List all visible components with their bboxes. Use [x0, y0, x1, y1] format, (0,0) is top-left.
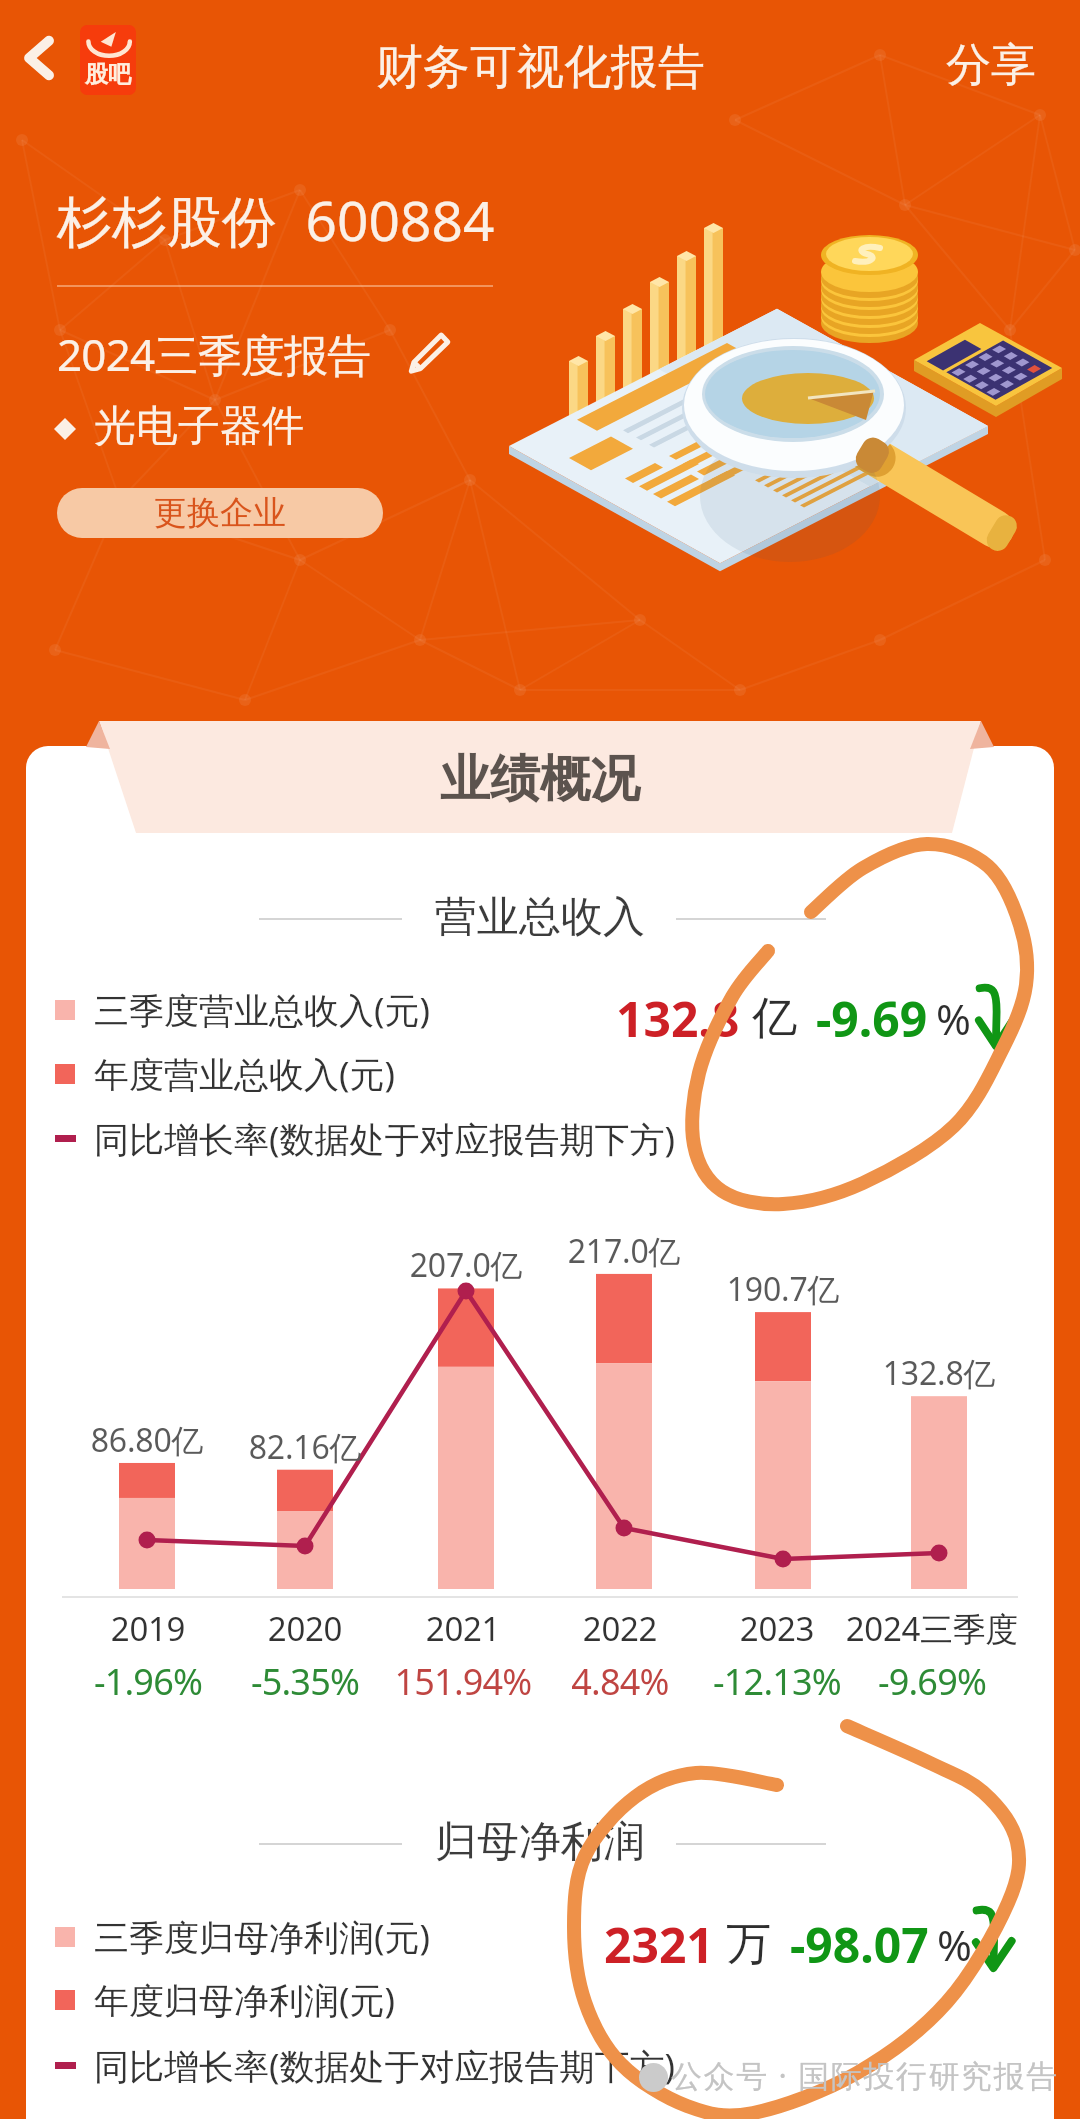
staticText: 151.94% — [353, 1657, 573, 1706]
staticText: -1.96% — [38, 1657, 258, 1706]
staticText: 2020 — [195, 1606, 415, 1651]
staticText: 万 — [726, 1916, 771, 1973]
staticText: 光电子器件 — [94, 400, 304, 453]
staticText: 分享 — [946, 37, 1036, 94]
staticText: 归母净利润 — [435, 1816, 645, 1869]
staticText: 同比增长率(数据处于对应报告期下方) — [94, 1115, 675, 1163]
staticText: 2024三季度报告 — [57, 324, 371, 384]
staticText: -12.13% — [667, 1657, 887, 1706]
staticText: % — [937, 1916, 972, 1973]
staticText: 杉杉股份 600884 — [57, 182, 495, 257]
staticText: 132.8 — [616, 986, 740, 1051]
staticText: 82.16亿 — [215, 1425, 395, 1469]
staticText: 财务可视化报告 — [376, 38, 705, 97]
button[interactable]: Edit report period — [406, 328, 450, 372]
staticText: 年度营业总收入(元) — [94, 1050, 396, 1098]
staticText: 132.8亿 — [849, 1351, 1029, 1395]
staticText: 190.7亿 — [693, 1267, 873, 1311]
staticText: 三季度归母净利润(元) — [94, 1913, 431, 1961]
button[interactable]: Back — [8, 26, 72, 90]
staticText: 同比增长率(数据处于对应报告期下方) — [94, 2042, 675, 2090]
staticText: 86.80亿 — [57, 1418, 237, 1462]
staticText: -9.69 — [816, 986, 928, 1051]
staticText: 亿 — [752, 990, 797, 1047]
staticText: % — [936, 990, 971, 1047]
staticText: 2024三季度 — [822, 1606, 1042, 1651]
button[interactable]: Guba forum — [80, 25, 136, 95]
staticText: 股吧 — [85, 60, 131, 89]
staticText: 公众号 · 国际投行研究报告 — [671, 2054, 1059, 2096]
staticText: 三季度营业总收入(元) — [94, 986, 431, 1034]
staticText: 217.0亿 — [534, 1229, 714, 1273]
staticText: 2321 — [604, 1912, 714, 1977]
staticText: -5.35% — [195, 1657, 415, 1706]
staticText: 2021 — [353, 1606, 573, 1651]
staticText: 年度归母净利润(元) — [94, 1976, 396, 2024]
staticText: 207.0亿 — [376, 1243, 556, 1287]
staticText: 2023 — [667, 1606, 887, 1651]
button[interactable]: 更换企业 — [57, 488, 383, 538]
staticText: 业绩概况 — [440, 748, 640, 811]
staticText: 4.84% — [510, 1657, 730, 1706]
staticText: 营业总收入 — [435, 891, 645, 944]
staticText: -98.07 — [790, 1912, 929, 1977]
button[interactable]: 分享 — [946, 37, 1036, 94]
staticText: 2022 — [510, 1606, 730, 1651]
staticText: 更换企业 — [154, 492, 286, 534]
staticText: 2019 — [38, 1606, 258, 1651]
staticText: -9.69% — [822, 1657, 1042, 1706]
